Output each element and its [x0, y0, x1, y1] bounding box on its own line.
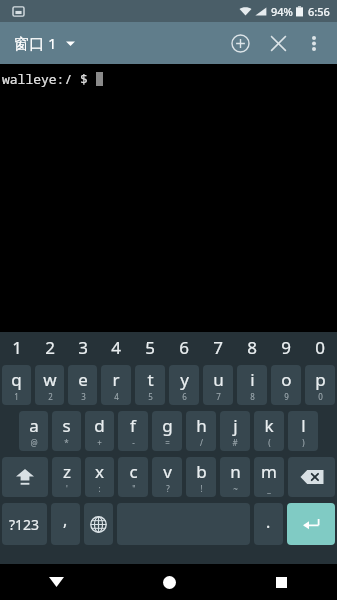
button[interactable]: m	[254, 457, 284, 497]
staticText: ?	[166, 483, 170, 494]
staticText: t	[147, 368, 154, 391]
button[interactable]: .	[254, 503, 283, 545]
staticText: f	[130, 414, 136, 437]
button[interactable]: 7	[201, 332, 235, 362]
button[interactable]: 窗口 1	[8, 29, 81, 57]
button[interactable]: t	[135, 365, 165, 405]
button[interactable]: ?123	[2, 503, 47, 545]
button[interactable]: 5	[133, 332, 167, 362]
button[interactable]: w	[35, 365, 64, 405]
button[interactable]: b	[186, 457, 216, 497]
button[interactable]: d	[85, 411, 114, 451]
staticText: @	[30, 437, 38, 448]
staticText: 94%	[271, 4, 293, 19]
staticText: 2	[45, 336, 55, 359]
staticText: 0	[315, 336, 325, 359]
staticText: *	[64, 437, 69, 448]
button[interactable]: g	[152, 411, 182, 451]
staticText: -	[132, 437, 135, 448]
staticText: p	[315, 368, 326, 391]
button[interactable]: 4	[99, 332, 133, 362]
button[interactable]: 1	[0, 332, 33, 362]
staticText: e	[78, 368, 88, 391]
button[interactable]: l	[288, 411, 318, 451]
button[interactable]: k	[254, 411, 284, 451]
staticText: u	[213, 368, 224, 391]
button[interactable]: Close window	[259, 24, 297, 62]
staticText: (	[268, 437, 271, 448]
staticText: a	[29, 414, 39, 437]
staticText: j	[233, 414, 238, 437]
staticText: b	[196, 460, 207, 483]
button[interactable]: More options	[297, 26, 331, 60]
button[interactable]: i	[237, 365, 267, 405]
button[interactable]: 0	[303, 332, 337, 362]
staticText: 窗口 1	[14, 33, 57, 53]
button[interactable]: Change keyboard language	[84, 503, 113, 545]
staticText: 8	[250, 391, 255, 402]
button[interactable]: New window	[221, 24, 259, 62]
staticText: '	[66, 483, 68, 494]
button[interactable]: 2	[33, 332, 66, 362]
button[interactable]: c	[118, 457, 148, 497]
staticText: h	[196, 414, 207, 437]
button[interactable]: 8	[235, 332, 269, 362]
staticText: s	[62, 414, 71, 437]
button[interactable]: r	[101, 365, 131, 405]
staticText: 6	[182, 391, 187, 402]
staticText: /	[200, 437, 203, 448]
staticText: 9	[281, 336, 291, 359]
staticText: k	[264, 414, 274, 437]
staticText: x	[95, 460, 104, 483]
staticText: 7	[216, 391, 221, 402]
staticText: 6:56	[308, 4, 330, 19]
staticText: y	[180, 368, 189, 391]
button[interactable]: 9	[269, 332, 303, 362]
button[interactable]: f	[118, 411, 148, 451]
button[interactable]: walleye:/ $	[0, 64, 337, 332]
staticText: 1	[14, 391, 19, 402]
button[interactable]: n	[220, 457, 250, 497]
button[interactable]: q	[2, 365, 31, 405]
staticText: w	[43, 368, 57, 391]
staticText: _	[267, 483, 271, 494]
staticText: 3	[78, 336, 88, 359]
staticText: c	[129, 460, 138, 483]
button[interactable]: o	[271, 365, 301, 405]
button[interactable]: u	[203, 365, 233, 405]
button[interactable]: p	[305, 365, 335, 405]
button[interactable]: 3	[66, 332, 99, 362]
staticText: #	[232, 437, 238, 448]
button[interactable]: 6	[167, 332, 201, 362]
staticText: :	[98, 483, 101, 494]
staticText: g	[162, 414, 173, 437]
button[interactable]: Home	[113, 564, 225, 600]
button[interactable]: Hide keyboard	[0, 564, 113, 600]
staticText: o	[281, 368, 292, 391]
button[interactable]: v	[152, 457, 182, 497]
staticText: m	[261, 460, 277, 483]
button[interactable]: Enter	[287, 503, 335, 545]
button[interactable]: h	[186, 411, 216, 451]
button[interactable]: s	[52, 411, 81, 451]
button[interactable]: x	[85, 457, 114, 497]
button[interactable]: Backspace	[288, 457, 335, 497]
staticText: 7	[213, 336, 223, 359]
button[interactable]: ,	[51, 503, 80, 545]
button[interactable]: z	[52, 457, 81, 497]
button[interactable]: a	[19, 411, 48, 451]
staticText: v	[163, 460, 172, 483]
staticText: d	[94, 414, 105, 437]
staticText: "	[132, 483, 136, 494]
staticText: 8	[247, 336, 257, 359]
staticText: n	[230, 460, 241, 483]
button[interactable]: e	[68, 365, 97, 405]
staticText: 6	[179, 336, 189, 359]
button[interactable]: y	[169, 365, 199, 405]
button[interactable]: Shift	[2, 457, 48, 497]
staticText: .	[266, 511, 271, 533]
button[interactable]: j	[220, 411, 250, 451]
button[interactable]: Recent apps	[225, 564, 337, 600]
staticText: 5	[145, 336, 155, 359]
